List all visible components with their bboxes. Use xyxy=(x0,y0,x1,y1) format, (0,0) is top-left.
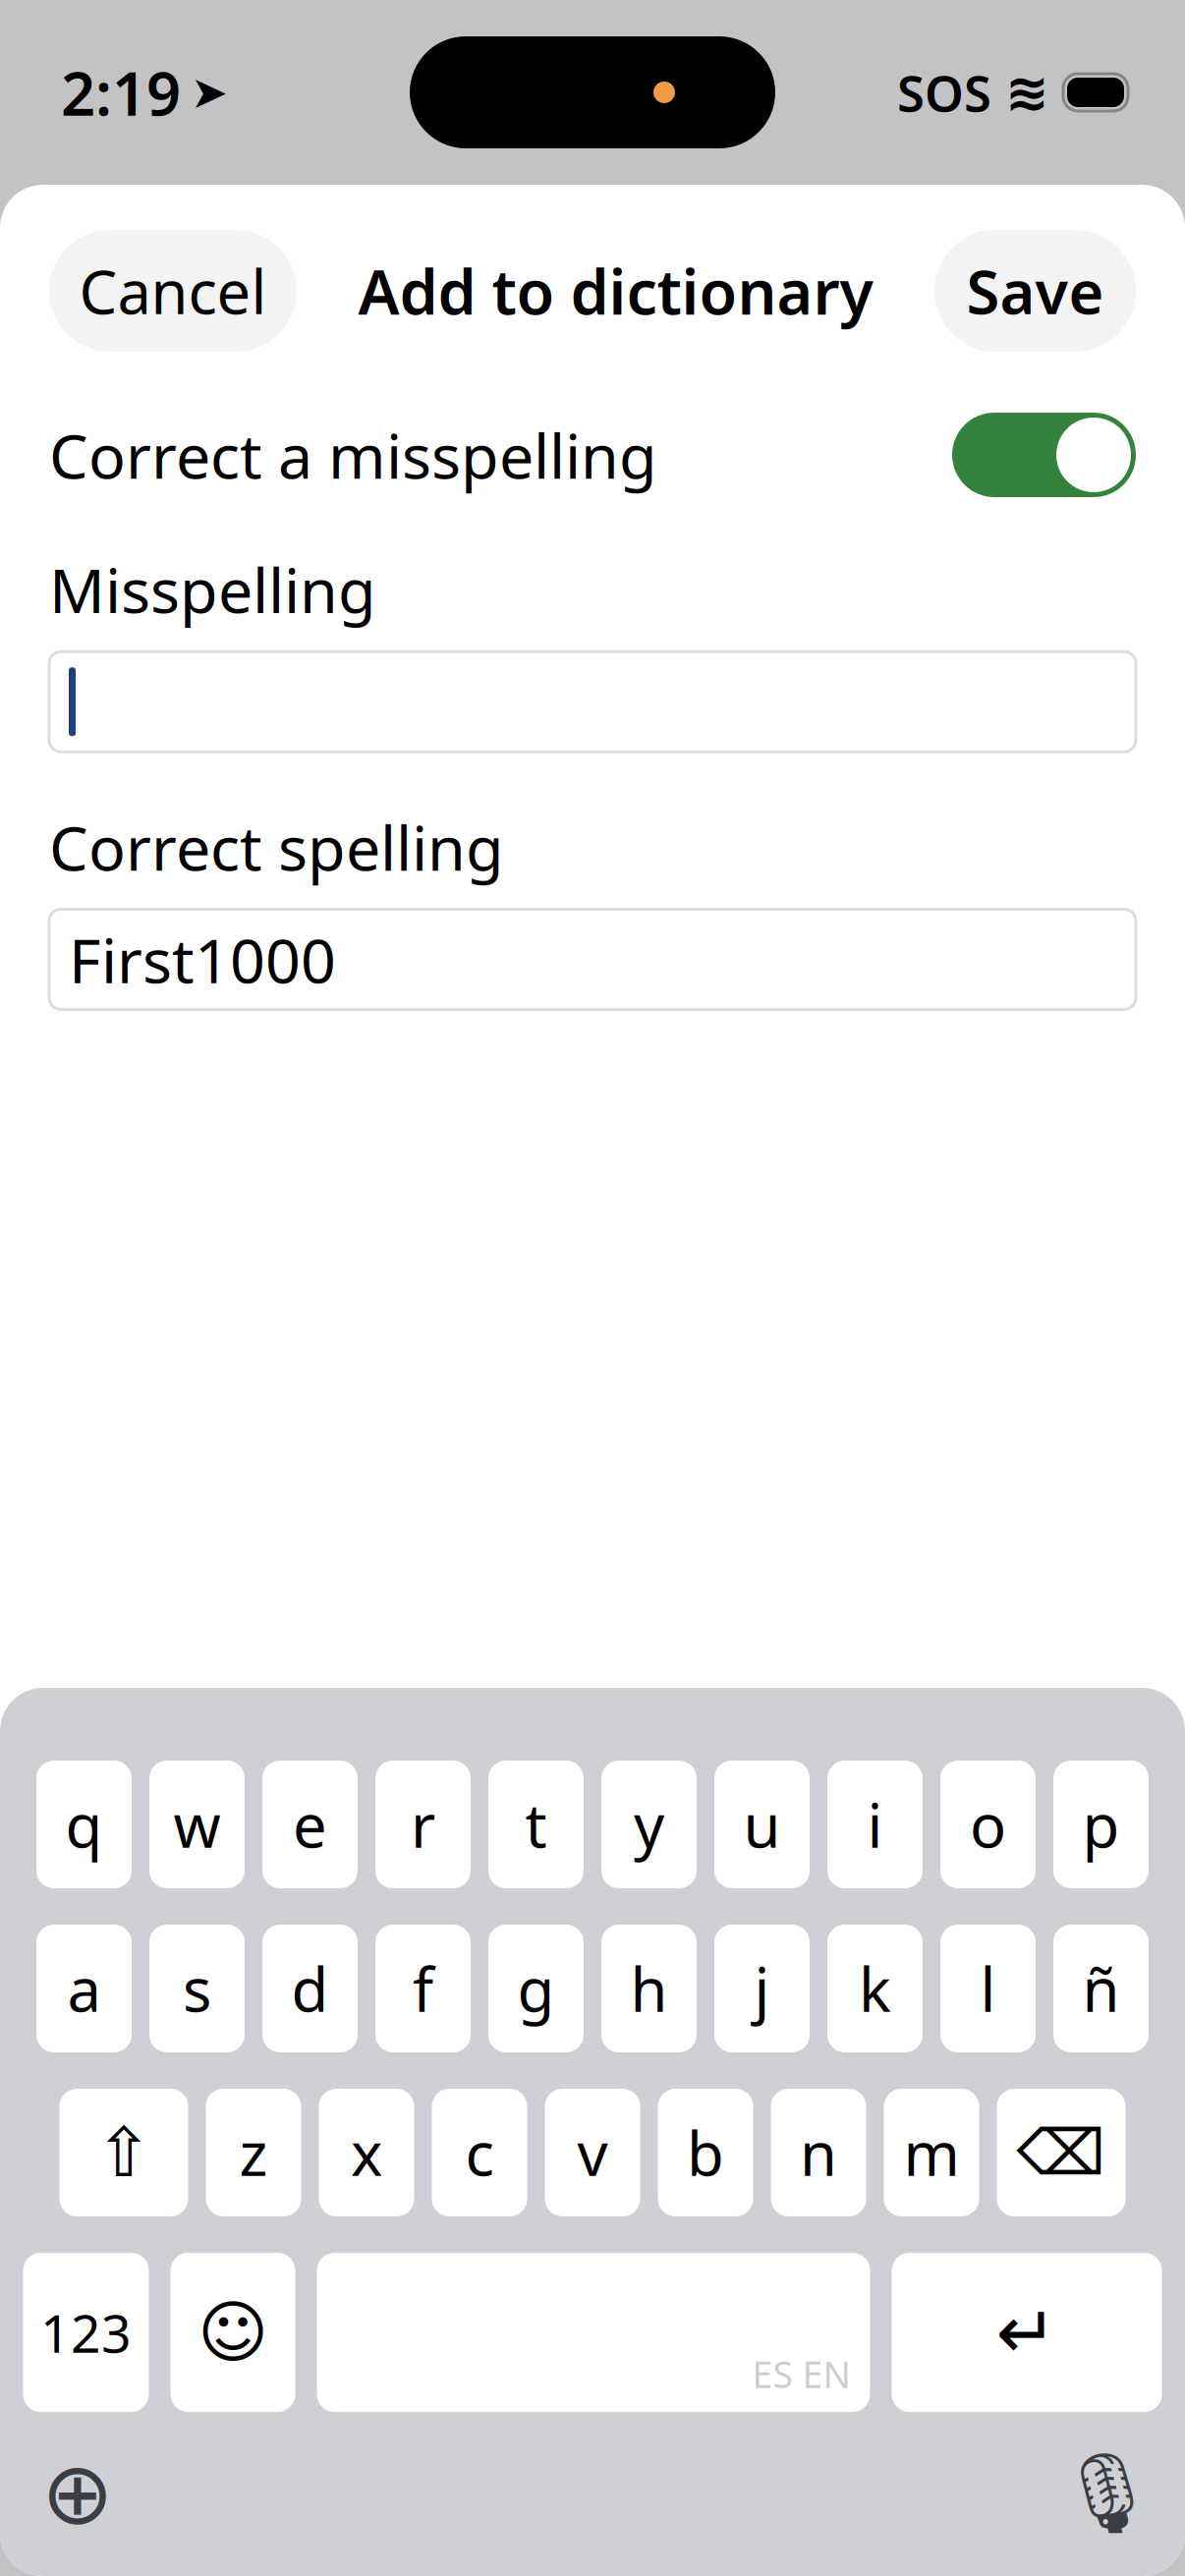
button[interactable]: Correct a misspelling xyxy=(952,413,1136,497)
button[interactable]: o xyxy=(940,1761,1036,1888)
staticText: 🎙 xyxy=(1057,2449,1157,2538)
button[interactable]: Return xyxy=(892,2253,1162,2412)
staticText: ñ xyxy=(1082,1949,1120,2028)
button[interactable]: Change keyboard xyxy=(24,2439,132,2548)
staticText: x xyxy=(351,2113,382,2193)
staticText: h xyxy=(630,1949,668,2028)
staticText: 2:19 xyxy=(61,52,181,132)
staticText: y xyxy=(634,1784,664,1864)
button[interactable]: m xyxy=(884,2089,979,2216)
button[interactable]: Delete xyxy=(997,2089,1126,2216)
button[interactable]: i xyxy=(827,1761,923,1888)
staticText: ☺ xyxy=(197,2294,268,2371)
button[interactable]: b xyxy=(658,2089,753,2216)
button[interactable]: p xyxy=(1053,1761,1149,1888)
button[interactable]: ñ xyxy=(1053,1925,1149,2052)
button[interactable]: d xyxy=(262,1925,358,2052)
button[interactable]: Dictate xyxy=(1053,2439,1161,2548)
staticText: ➤ xyxy=(191,67,228,118)
button[interactable]: g xyxy=(488,1925,584,2052)
staticText: 123 xyxy=(40,2298,132,2367)
button[interactable]: f xyxy=(375,1925,471,2052)
button[interactable]: l xyxy=(940,1925,1036,2052)
button[interactable]: n xyxy=(771,2089,866,2216)
staticText: t xyxy=(525,1784,547,1864)
staticText: Correct a misspelling xyxy=(49,414,657,496)
button[interactable]: Space xyxy=(317,2253,870,2412)
staticText: j xyxy=(754,1949,770,2028)
staticText: Correct spelling xyxy=(49,806,504,888)
button[interactable]: Save xyxy=(934,230,1136,352)
button[interactable]: 123 xyxy=(23,2253,149,2412)
staticText: i xyxy=(867,1784,883,1864)
button[interactable]: r xyxy=(375,1761,471,1888)
staticText: Save xyxy=(966,251,1104,331)
staticText: l xyxy=(980,1949,996,2028)
staticText: d xyxy=(291,1949,329,2028)
staticText: g xyxy=(517,1949,555,2028)
staticText: Cancel xyxy=(79,251,267,331)
staticText: ES EN xyxy=(752,2349,850,2398)
staticText: e xyxy=(293,1784,327,1864)
button[interactable]: t xyxy=(488,1761,584,1888)
staticText: ⌫ xyxy=(1016,2117,1106,2188)
staticText: f xyxy=(413,1949,433,2028)
staticText: r xyxy=(411,1784,435,1864)
staticText: First1000 xyxy=(69,918,336,1000)
staticText: v xyxy=(577,2113,608,2193)
button[interactable]: s xyxy=(149,1925,245,2052)
staticText: p xyxy=(1082,1784,1120,1864)
staticText: SOS xyxy=(897,59,991,125)
button[interactable] xyxy=(49,652,1136,752)
staticText: a xyxy=(67,1949,101,2028)
staticText: ⊕ xyxy=(41,2444,114,2543)
button[interactable]: Emoji xyxy=(170,2253,295,2412)
staticText: ≋ xyxy=(1005,63,1049,122)
button[interactable]: c xyxy=(432,2089,527,2216)
staticText: ↵ xyxy=(996,2291,1058,2374)
button[interactable]: w xyxy=(149,1761,245,1888)
button[interactable]: j xyxy=(714,1925,810,2052)
button[interactable]: e xyxy=(262,1761,358,1888)
staticText: q xyxy=(65,1784,103,1864)
staticText: Add to dictionary xyxy=(358,250,873,332)
button[interactable]: First1000 xyxy=(49,909,1136,1009)
staticText: c xyxy=(465,2113,494,2193)
staticText: ⇧ xyxy=(95,2114,152,2191)
staticText: m xyxy=(903,2113,959,2193)
button[interactable]: a xyxy=(36,1925,132,2052)
button[interactable]: Cancel xyxy=(49,230,297,352)
button[interactable]: x xyxy=(319,2089,414,2216)
button[interactable]: h xyxy=(601,1925,697,2052)
staticText: Misspelling xyxy=(49,548,376,630)
staticText: z xyxy=(239,2113,268,2193)
button[interactable]: v xyxy=(545,2089,640,2216)
button[interactable]: z xyxy=(206,2089,301,2216)
staticText: o xyxy=(970,1784,1006,1864)
button[interactable]: q xyxy=(36,1761,132,1888)
staticText: k xyxy=(859,1949,891,2028)
staticText: s xyxy=(183,1949,211,2028)
button[interactable]: u xyxy=(714,1761,810,1888)
staticText: w xyxy=(173,1784,221,1864)
staticText: n xyxy=(800,2113,837,2193)
button[interactable]: k xyxy=(827,1925,923,2052)
staticText: b xyxy=(687,2113,724,2193)
staticText: u xyxy=(743,1784,781,1864)
button[interactable]: Shift xyxy=(59,2089,188,2216)
button[interactable]: y xyxy=(601,1761,697,1888)
